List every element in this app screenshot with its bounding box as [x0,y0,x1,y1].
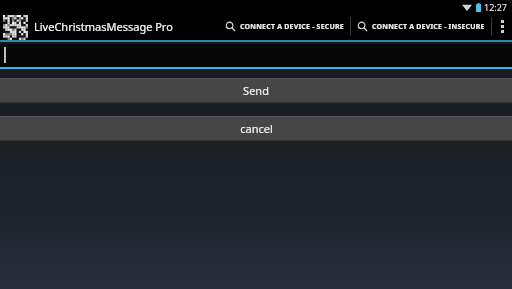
staticText: Send [243,83,269,98]
button[interactable]: cancel [0,116,512,141]
staticText: LiveChristmasMessage Pro [34,19,173,34]
staticText: 12:27 [484,1,508,13]
button[interactable]: CONNECT A DEVICE - SECURE [219,13,350,40]
button[interactable] [0,44,512,69]
staticText: CONNECT A DEVICE - SECURE [240,22,344,32]
button[interactable]: CONNECT A DEVICE - INSECURE [351,13,491,40]
button[interactable]: Send [0,78,512,103]
button[interactable]: More options [492,13,512,40]
staticText: cancel [240,121,273,136]
staticText: CONNECT A DEVICE - INSECURE [372,22,485,32]
